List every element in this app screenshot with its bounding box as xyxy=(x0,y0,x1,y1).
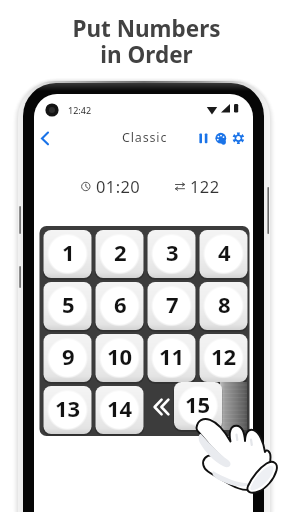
button[interactable]: 10 xyxy=(96,334,144,382)
staticText: 13 xyxy=(55,393,81,423)
button[interactable]: 4 xyxy=(200,230,248,278)
button[interactable]: Back xyxy=(36,125,62,151)
button[interactable]: 1 xyxy=(44,230,92,278)
button[interactable]: 3 xyxy=(148,230,196,278)
button[interactable]: Pause xyxy=(192,126,216,150)
button[interactable]: Settings xyxy=(228,126,252,150)
staticText: 6 xyxy=(114,289,127,319)
staticText: 11 xyxy=(159,341,185,371)
staticText: Put Numbers in Order xyxy=(72,13,221,70)
staticText: 5 xyxy=(62,289,75,319)
staticText: 10 xyxy=(107,341,133,371)
staticText: 15 xyxy=(185,389,211,419)
staticText: 4 xyxy=(218,237,231,267)
staticText: 12 xyxy=(211,341,237,371)
button[interactable]: 9 xyxy=(44,334,92,382)
button[interactable]: 11 xyxy=(148,334,196,382)
button[interactable]: 6 xyxy=(96,282,144,330)
staticText: Classic xyxy=(122,129,168,146)
button[interactable]: 13 xyxy=(44,386,92,434)
staticText: 122 xyxy=(190,175,220,197)
staticText: 12:42 xyxy=(68,104,92,116)
button[interactable]: 8 xyxy=(200,282,248,330)
button[interactable]: 15 xyxy=(174,382,222,430)
staticText: 7 xyxy=(166,289,179,319)
staticText: 2 xyxy=(114,237,127,267)
staticText: 14 xyxy=(107,393,133,423)
staticText: 01:20 xyxy=(96,175,141,197)
staticText: 1 xyxy=(62,237,75,267)
button[interactable]: 14 xyxy=(96,386,144,434)
button[interactable]: Theme xyxy=(210,126,234,150)
button[interactable]: 12 xyxy=(200,334,248,382)
staticText: 9 xyxy=(62,341,75,371)
staticText: 3 xyxy=(166,237,179,267)
staticText: 8 xyxy=(218,289,231,319)
button[interactable]: 2 xyxy=(96,230,144,278)
button[interactable]: 7 xyxy=(148,282,196,330)
button[interactable]: 5 xyxy=(44,282,92,330)
